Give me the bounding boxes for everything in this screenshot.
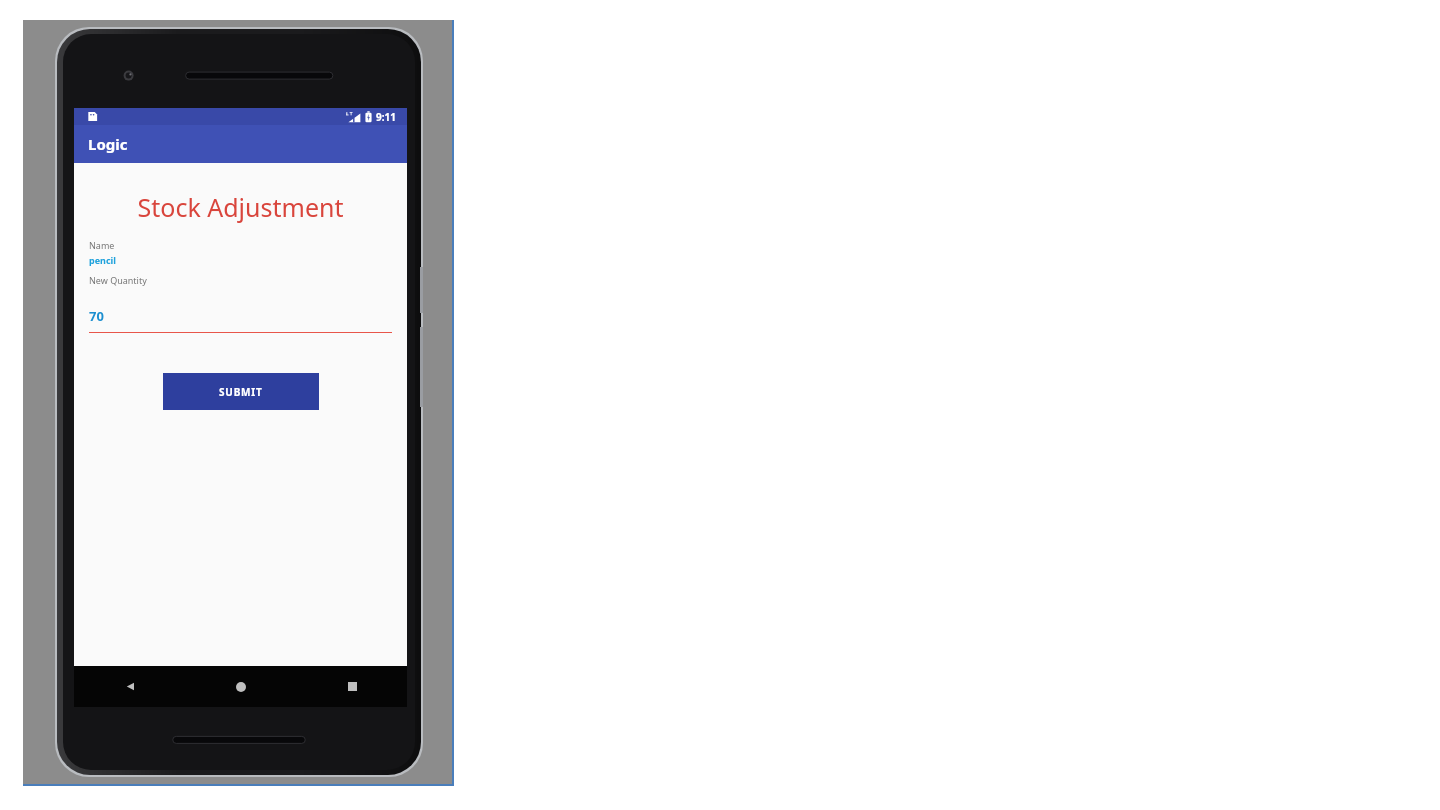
staticText: pencil — [89, 254, 116, 266]
staticText: Logic — [88, 134, 128, 154]
staticText: Name — [89, 239, 115, 251]
button[interactable]: Back — [108, 666, 152, 707]
staticText: Stock Adjustment — [90, 190, 391, 224]
staticText: 9:11 — [376, 110, 396, 124]
button[interactable]: 70 — [89, 307, 392, 333]
button[interactable]: Home — [219, 666, 263, 707]
button[interactable]: SUBMIT — [163, 373, 319, 410]
staticText: SUBMIT — [219, 385, 263, 399]
staticText: New Quantity — [89, 274, 147, 286]
staticText: 70 — [89, 307, 104, 325]
button[interactable]: Recent apps — [330, 666, 374, 707]
